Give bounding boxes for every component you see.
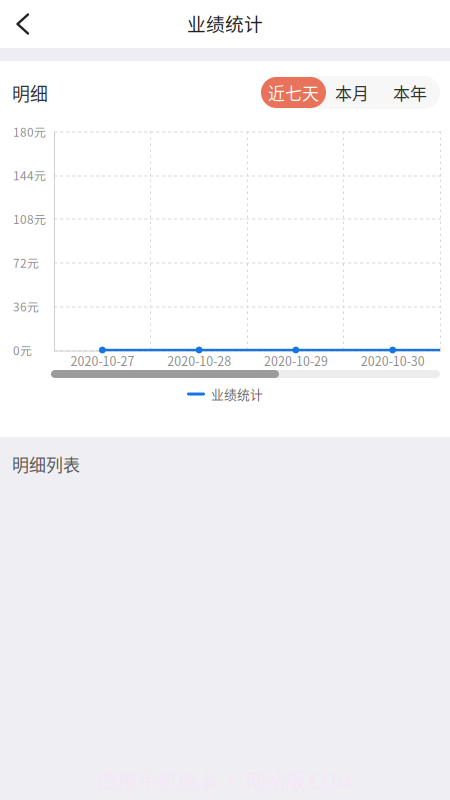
staticText: 72元 [13,254,39,271]
staticText: 2020-10-29 [264,351,328,369]
staticText: 明细列表 [12,452,80,476]
staticText: 业绩统计 [211,385,263,403]
button[interactable]: 本月 [326,77,378,108]
staticText: 本年 [393,80,427,105]
staticText: 业绩统计 [187,9,263,36]
staticText: 108元 [13,210,46,227]
staticText: 明细 [12,80,48,106]
button[interactable]: 近七天 [261,77,326,108]
staticText: 近七天 [268,80,319,105]
staticText: 144元 [13,167,46,184]
staticText: 2020-10-28 [167,351,231,369]
staticText: 0元 [13,341,32,359]
staticText: 本月 [335,80,369,105]
staticText: 36元 [13,298,39,315]
staticText: 2020-10-27 [70,351,134,369]
button[interactable]: 本年 [380,77,440,108]
staticText: 180元 [13,123,46,140]
button[interactable]: Back [0,0,46,48]
staticText: 2020-10-30 [361,351,425,369]
